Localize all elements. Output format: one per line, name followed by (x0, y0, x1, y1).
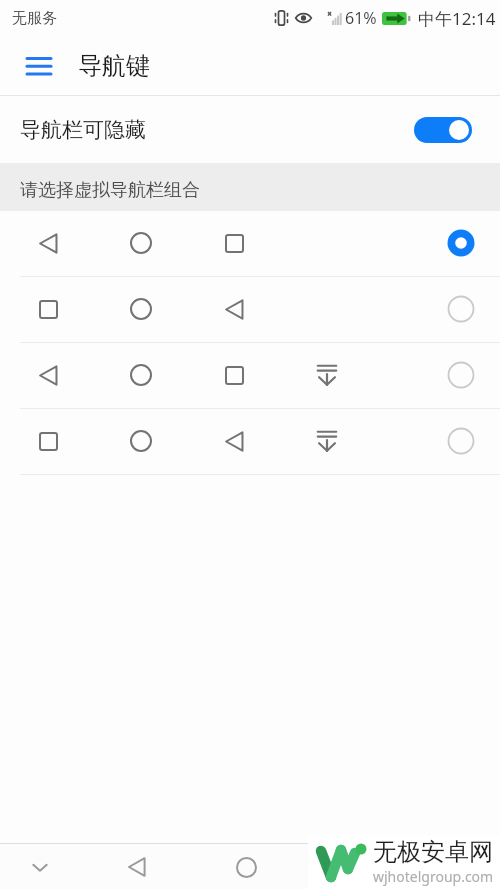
staticText: wjhotelgroup.com (373, 867, 494, 886)
staticText: 无极安卓网 (373, 837, 493, 867)
button[interactable] (28, 855, 52, 879)
button[interactable] (0, 277, 500, 342)
staticText: 请选择虚拟导航栏组合 (20, 179, 200, 202)
button[interactable] (125, 855, 149, 879)
button[interactable] (343, 855, 367, 879)
button[interactable] (234, 855, 258, 879)
button[interactable] (0, 343, 500, 408)
button[interactable] (0, 211, 500, 276)
staticText: 无服务 (12, 9, 57, 28)
button[interactable]: 导航栏可隐藏 (20, 96, 472, 163)
button[interactable] (22, 49, 56, 83)
staticText: 61% (345, 7, 377, 29)
staticText: 导航栏可隐藏 (20, 117, 146, 143)
button[interactable] (0, 409, 500, 474)
staticText: 导航键 (78, 51, 150, 81)
staticText: 中午12:14 (418, 7, 496, 30)
